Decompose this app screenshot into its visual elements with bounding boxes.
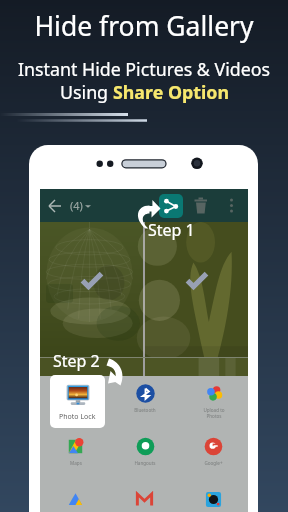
button[interactable]: Google+ xyxy=(179,436,248,489)
button[interactable]: Back xyxy=(45,194,69,218)
staticText: Step 1 xyxy=(148,219,195,241)
button[interactable]: Maps xyxy=(40,436,110,489)
button[interactable]: Bluetooth xyxy=(110,383,179,436)
staticText: Bluetooth xyxy=(134,407,156,413)
button[interactable]: Photos xyxy=(179,489,248,512)
staticText: Upload to Photos xyxy=(203,407,225,419)
staticText: Instant Hide Pictures & Videos xyxy=(0,57,288,81)
button[interactable]: Gmail xyxy=(110,489,179,512)
staticText: Photo Lock xyxy=(59,412,96,422)
button[interactable]: Delete xyxy=(189,194,213,218)
button[interactable] xyxy=(145,222,248,357)
button[interactable] xyxy=(145,358,248,376)
button[interactable]: Share xyxy=(159,194,183,218)
button[interactable]: Photo Lock xyxy=(50,375,105,428)
staticText: (4) xyxy=(70,198,83,213)
button[interactable] xyxy=(40,358,143,376)
staticText: Share Option xyxy=(113,80,229,104)
staticText: Google+ xyxy=(204,460,223,466)
staticText: Hide from Gallery xyxy=(0,8,288,44)
button[interactable] xyxy=(40,222,143,357)
button[interactable]: More options xyxy=(222,196,241,215)
button[interactable]: Upload to Photos xyxy=(179,383,248,436)
staticText: Using xyxy=(60,80,113,104)
button[interactable]: Photo Lock xyxy=(40,383,110,436)
staticText: Maps xyxy=(70,460,82,466)
staticText: Hangouts xyxy=(134,460,156,466)
staticText: Step 2 xyxy=(53,350,100,372)
button[interactable]: Hangouts xyxy=(110,436,179,489)
button[interactable]: Drive xyxy=(40,489,110,512)
